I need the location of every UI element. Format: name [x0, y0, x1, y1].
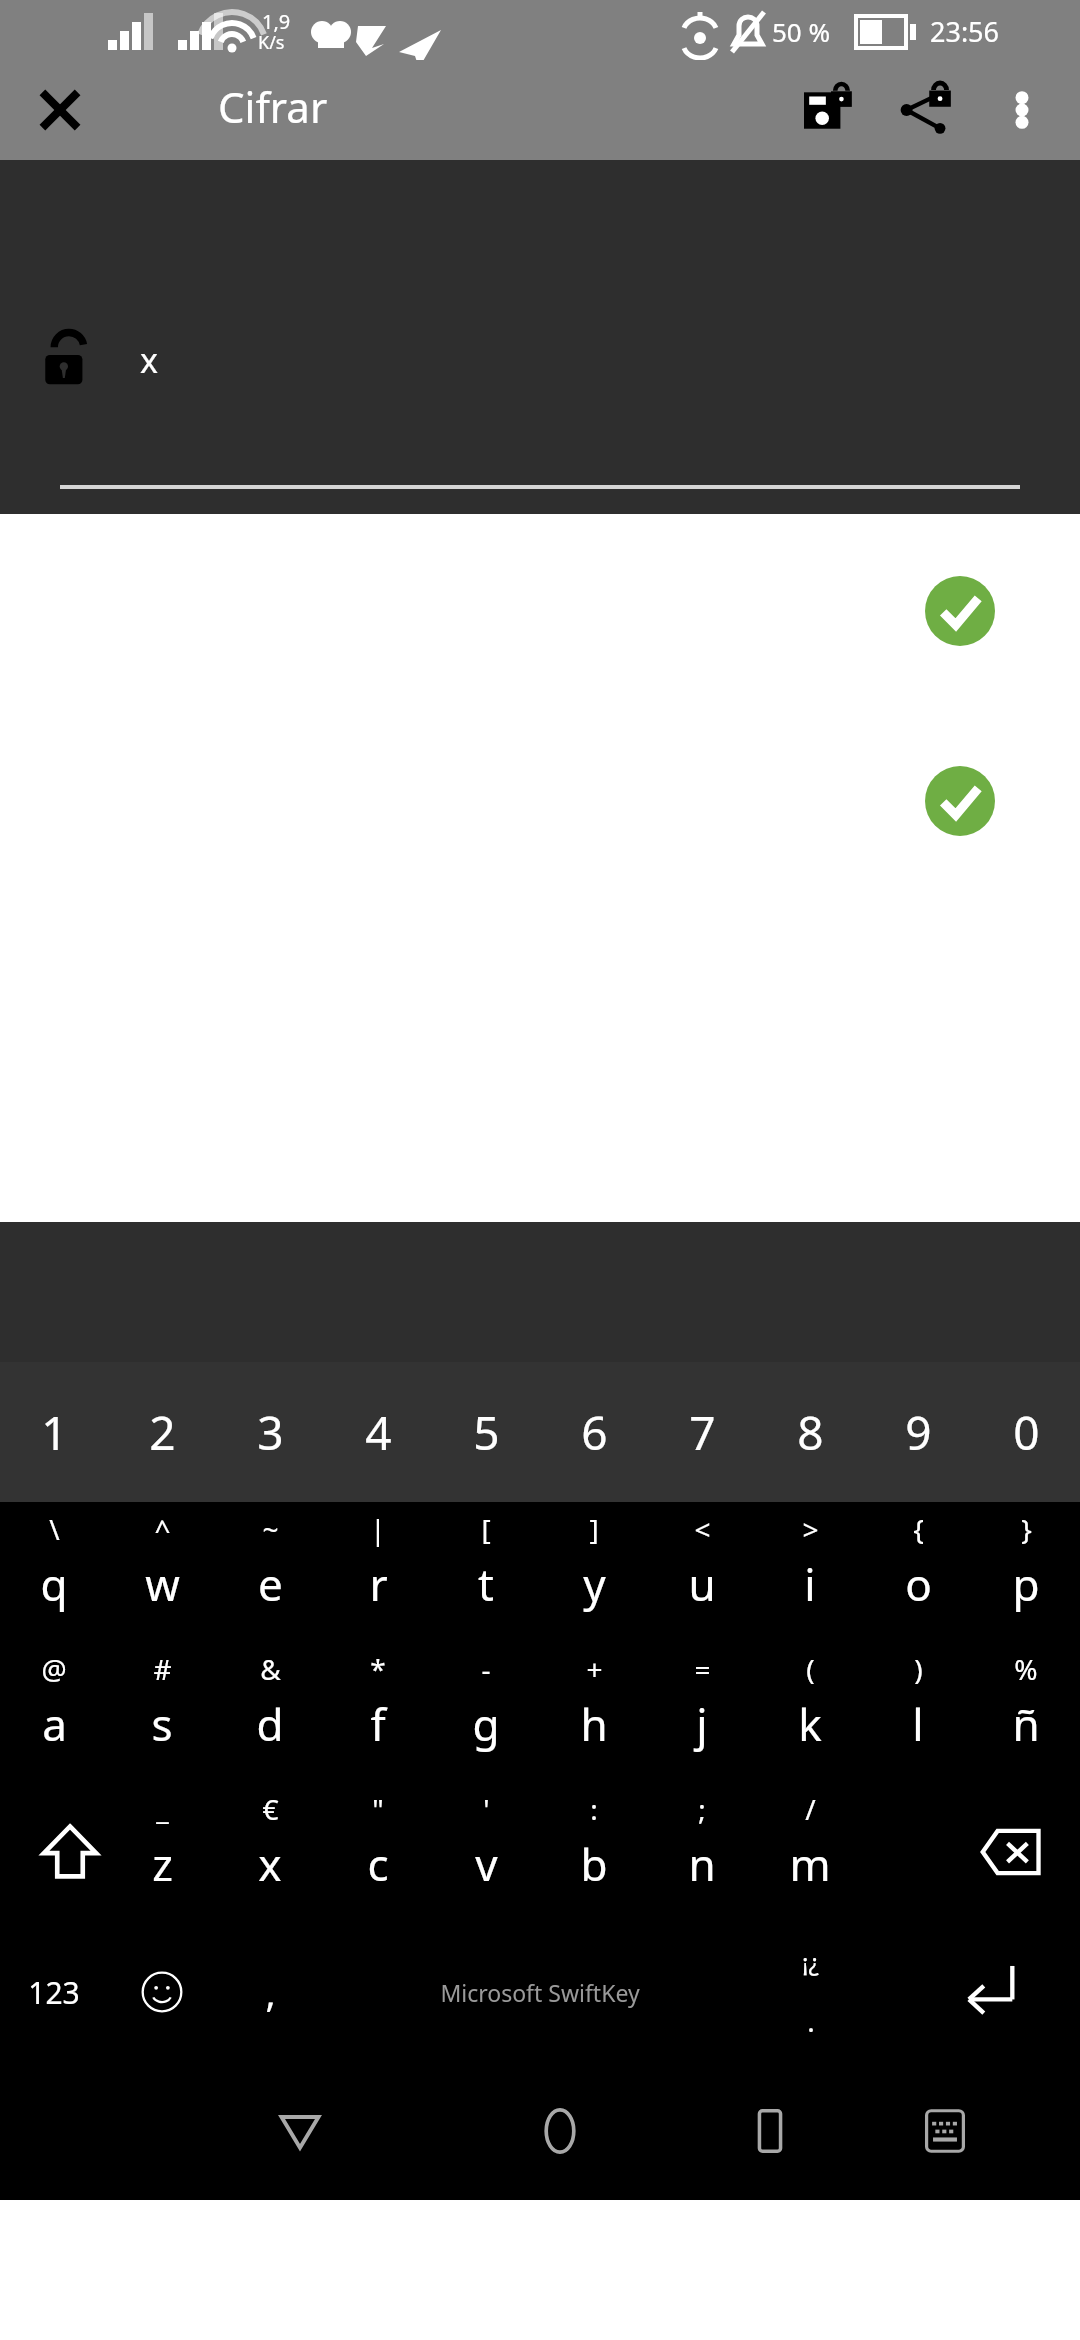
button[interactable]: :	[540, 1782, 648, 1922]
staticText: |	[370, 1510, 386, 1548]
button[interactable]: Shift	[0, 1782, 140, 1922]
button[interactable]: +	[540, 1642, 648, 1782]
button[interactable]: Share encrypted	[878, 62, 974, 158]
staticText: .	[807, 2002, 815, 2040]
staticText: b	[580, 1834, 608, 1894]
button[interactable]: Verified	[925, 766, 995, 836]
button[interactable]: }	[972, 1502, 1080, 1642]
staticText: {	[913, 1510, 924, 1548]
button[interactable]: 0	[972, 1362, 1080, 1502]
button[interactable]: @	[0, 1642, 108, 1782]
staticText: x	[258, 1834, 282, 1894]
staticText: (	[806, 1650, 815, 1688]
staticText: &	[260, 1650, 281, 1688]
button[interactable]: Emoji	[108, 1922, 216, 2062]
button[interactable]: ;	[648, 1782, 756, 1922]
staticText: #	[153, 1650, 172, 1688]
button[interactable]: (	[756, 1642, 864, 1782]
button[interactable]: [	[432, 1502, 540, 1642]
button[interactable]: *	[324, 1642, 432, 1782]
staticText: >	[802, 1510, 819, 1548]
staticText: d	[256, 1694, 284, 1754]
button[interactable]: 5	[432, 1362, 540, 1502]
staticText: k	[798, 1694, 822, 1754]
staticText: j	[696, 1694, 708, 1754]
button[interactable]: 9	[864, 1362, 972, 1502]
staticText: 23:56	[930, 13, 1000, 50]
button[interactable]: {	[864, 1502, 972, 1642]
staticText: a	[42, 1694, 67, 1754]
staticText: -	[481, 1650, 491, 1688]
button[interactable]: ¡¿	[756, 1922, 864, 2062]
button[interactable]: 7	[648, 1362, 756, 1502]
button[interactable]: Enter	[900, 1922, 1080, 2062]
button[interactable]: #	[108, 1642, 216, 1782]
staticText: <	[694, 1510, 711, 1548]
button[interactable]: -	[432, 1642, 540, 1782]
button[interactable]: '	[432, 1782, 540, 1922]
button[interactable]: More options	[974, 62, 1070, 158]
button[interactable]: Home	[505, 2076, 615, 2186]
button[interactable]: Recents	[715, 2076, 825, 2186]
button[interactable]: ~	[216, 1502, 324, 1642]
button[interactable]: x	[44, 328, 158, 392]
button[interactable]: ]	[540, 1502, 648, 1642]
button[interactable]: &	[216, 1642, 324, 1782]
staticText: e	[258, 1554, 283, 1614]
staticText: /	[805, 1790, 816, 1828]
button[interactable]: \	[0, 1502, 108, 1642]
button[interactable]: 2	[108, 1362, 216, 1502]
button[interactable]: Close	[24, 74, 96, 146]
staticText: 1,9	[262, 8, 291, 35]
staticText: w	[145, 1554, 180, 1614]
staticText: 6	[581, 1401, 608, 1464]
button[interactable]: 1	[0, 1362, 108, 1502]
button[interactable]: /	[756, 1782, 864, 1922]
button[interactable]: _	[108, 1782, 216, 1922]
button[interactable]: €	[216, 1782, 324, 1922]
staticText: u	[688, 1554, 716, 1614]
staticText: }	[1021, 1510, 1032, 1548]
staticText: K/s	[258, 30, 285, 55]
button[interactable]: Space	[324, 1922, 756, 2062]
button[interactable]: 8	[756, 1362, 864, 1502]
button[interactable]: "	[324, 1782, 432, 1922]
button[interactable]: ^	[108, 1502, 216, 1642]
staticText: @	[41, 1650, 67, 1688]
button[interactable]: Verified	[925, 576, 995, 646]
button[interactable]: Hide keyboard	[890, 2076, 1000, 2186]
staticText: o	[905, 1554, 932, 1614]
staticText: 9	[905, 1401, 932, 1464]
staticText: Microsoft SwiftKey	[440, 1977, 640, 2008]
button[interactable]: <	[648, 1502, 756, 1642]
staticText: Cifrar	[218, 78, 328, 135]
staticText: i	[804, 1554, 816, 1614]
button[interactable]: Backspace	[940, 1782, 1080, 1922]
button[interactable]: |	[324, 1502, 432, 1642]
button[interactable]: )	[864, 1642, 972, 1782]
staticText: 123	[28, 1972, 80, 2013]
staticText: =	[694, 1650, 711, 1688]
staticText: v	[475, 1834, 498, 1894]
button[interactable]: 4	[324, 1362, 432, 1502]
staticText: l	[912, 1694, 924, 1754]
button[interactable]: 3	[216, 1362, 324, 1502]
button[interactable]: Back	[245, 2076, 355, 2186]
staticText: ¡¿	[802, 1945, 819, 1978]
button[interactable]: Save encrypted	[782, 62, 878, 158]
button[interactable]: >	[756, 1502, 864, 1642]
staticText: r	[369, 1554, 388, 1614]
button[interactable]: 6	[540, 1362, 648, 1502]
staticText: 3	[257, 1401, 284, 1464]
staticText: 2	[149, 1401, 176, 1464]
button[interactable]: %	[972, 1642, 1080, 1782]
button[interactable]: 123	[0, 1922, 108, 2062]
staticText: +	[586, 1650, 603, 1688]
staticText: ,	[265, 1966, 276, 2018]
button[interactable]: ,	[216, 1922, 324, 2062]
staticText: 8	[797, 1401, 824, 1464]
staticText: *	[370, 1650, 386, 1688]
staticText: c	[367, 1834, 389, 1894]
button[interactable]: =	[648, 1642, 756, 1782]
